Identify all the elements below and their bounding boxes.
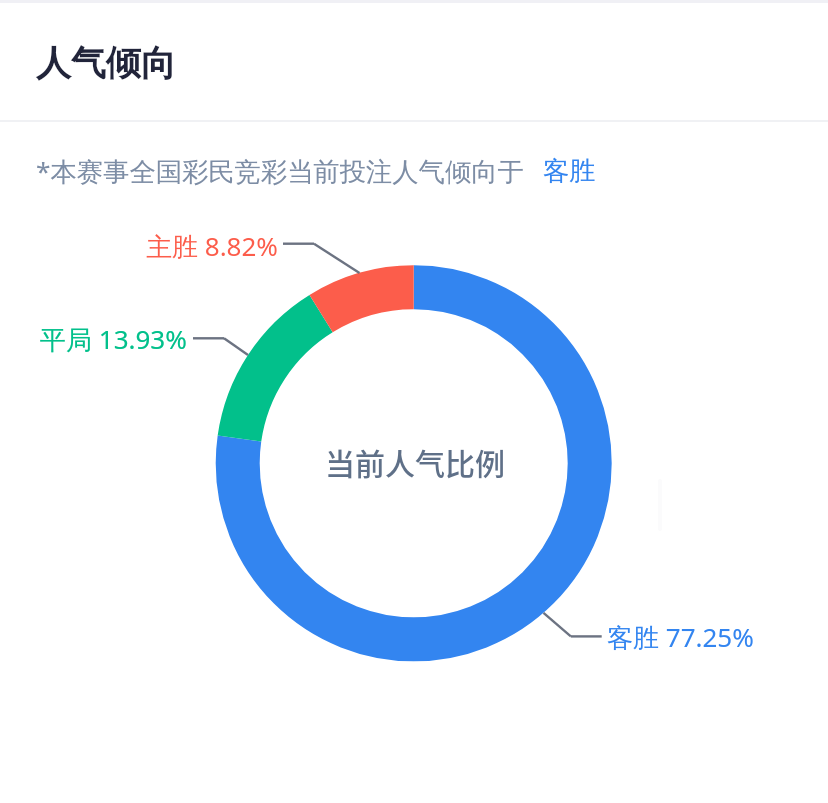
button[interactable]: 平局 13.93% — [40, 321, 187, 357]
button[interactable]: *本赛事全国彩民竞彩当前投注人气倾向于 — [36, 153, 596, 189]
button[interactable]: 主胜 8.82% — [146, 228, 278, 264]
button[interactable]: 人气倾向 — [0, 0, 828, 121]
other: 人气倾向环形图 — [0, 0, 828, 803]
button[interactable]: 客胜 77.25% — [607, 619, 754, 655]
staticText: 客胜 — [543, 155, 596, 188]
staticText: 人气倾向 — [36, 41, 176, 85]
staticText: 当前人气比例 — [325, 440, 505, 483]
staticText: *本赛事全国彩民竞彩当前投注人气倾向于 — [36, 153, 524, 189]
